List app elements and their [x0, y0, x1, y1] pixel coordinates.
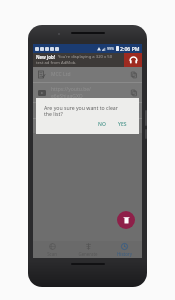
staticText: 2:06 PM [120, 45, 140, 52]
button[interactable]: +8801715950654 [33, 103, 142, 118]
staticText: History [117, 251, 132, 257]
staticText: https://youtu.be/ [51, 86, 91, 93]
button[interactable]: New job! [33, 53, 142, 67]
button[interactable]: Copy [129, 88, 138, 97]
staticText: Generate [78, 251, 98, 257]
staticText: You're displaying a 320 x 50 [58, 54, 113, 60]
staticText: New job! [36, 54, 56, 60]
staticText: Are you sure you want to clear the list? [44, 104, 118, 118]
button[interactable]: Generate [70, 241, 106, 258]
staticText: e6eShjaaGXQ [51, 93, 83, 100]
staticText: MCC Ltd [51, 71, 71, 78]
button[interactable]: History [106, 241, 142, 258]
button[interactable]: Clear history [117, 211, 135, 229]
button[interactable]: NO [96, 120, 108, 129]
staticText: +8801715950654 [51, 107, 92, 114]
staticText: NO [98, 121, 106, 128]
button[interactable]: Copy [33, 119, 142, 133]
button[interactable]: MCC Ltd [33, 67, 142, 82]
button[interactable]: YES [116, 120, 129, 129]
staticText: Scan [47, 251, 57, 257]
staticText: YES [118, 121, 127, 128]
staticText: test ad from AdMob. [36, 60, 77, 66]
button[interactable]: Copy [129, 70, 138, 79]
button[interactable]: https://youtu.be/ [33, 83, 142, 102]
staticText: 99% [107, 46, 115, 51]
